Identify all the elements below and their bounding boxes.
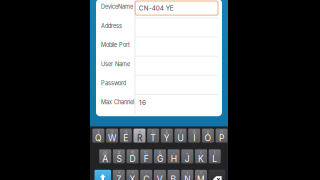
staticText: @ [103,150,108,156]
staticText: G [157,154,163,164]
staticText: * [118,171,120,176]
staticText: CN-404 YE [139,4,174,12]
button[interactable]: 1 [92,129,104,143]
staticText: 16 [139,99,146,107]
button[interactable]: + [181,149,193,163]
staticText: M [197,174,205,180]
staticText: DeviceName [101,3,133,10]
button[interactable]: ! [181,170,193,180]
button[interactable]: 4 [133,129,145,143]
staticText: User Name [101,61,130,67]
staticText: D [130,154,136,164]
staticText: Max Channel [101,99,134,106]
staticText: 5 [152,129,155,135]
button[interactable]: Address [96,18,222,37]
staticText: V [157,174,163,180]
staticText: ' [146,171,147,176]
button[interactable]: 7 [174,129,186,143]
staticText: ; [173,171,174,176]
staticText: Mobile Port [101,42,130,48]
staticText: - [173,150,175,156]
button[interactable]: ) [209,149,221,163]
button[interactable]: $ [127,149,139,163]
staticText: W [108,133,116,143]
button[interactable]: Mobile Port [96,37,222,56]
button[interactable]: : [154,170,166,180]
staticText: T [150,133,156,143]
button[interactable]: " [126,170,138,180]
button[interactable]: 9 [202,129,214,143]
button[interactable]: % [140,149,152,163]
button[interactable]: - [168,149,180,163]
staticText: H [171,154,177,164]
button[interactable]: ? [195,170,207,180]
staticText: 0 [220,129,223,135]
staticText: O [204,133,211,143]
staticText: R [137,133,142,143]
button[interactable]: 8 [188,129,200,143]
staticText: & [158,150,161,156]
staticText: L [212,154,217,164]
button[interactable]: Password [96,76,222,95]
staticText: 4 [138,129,141,135]
button[interactable]: Delete [209,170,225,180]
staticText: 7 [179,129,182,135]
staticText: X [129,174,135,180]
staticText: # [117,150,120,156]
button[interactable]: # [113,149,125,163]
button[interactable]: 3 [120,129,132,143]
staticText: 3 [124,129,127,135]
button[interactable]: 0 [216,129,228,143]
staticText: % [144,150,149,156]
staticText: B [171,174,177,180]
button[interactable]: ( [195,149,207,163]
staticText: N [184,174,190,180]
staticText: + [186,150,189,156]
staticText: 8 [193,129,196,135]
staticText: Z [116,174,121,180]
staticText: F [144,154,149,164]
button[interactable]: @ [99,149,111,163]
button[interactable]: 6 [161,129,173,143]
staticText: C [143,174,149,180]
button[interactable]: DeviceName [96,0,222,18]
staticText: " [131,171,133,176]
staticText: Q [95,133,102,143]
button[interactable]: & [154,149,166,163]
button[interactable]: * [113,170,125,180]
button[interactable]: ' [140,170,152,180]
staticText: 9 [206,129,209,135]
button[interactable]: User Name [96,56,222,76]
staticText: U [177,133,183,143]
staticText: 1 [97,129,99,135]
staticText: ( [200,150,202,156]
staticText: Y [164,133,170,143]
staticText: P [219,133,224,143]
button[interactable]: Max Channel [96,95,222,114]
staticText: Address [101,22,122,29]
staticText: 6 [165,129,168,135]
staticText: K [198,154,204,164]
staticText: ? [200,171,202,176]
staticText: Password [101,80,126,87]
staticText: S [116,154,121,164]
staticText: A [102,154,108,164]
staticText: ) [214,150,216,156]
staticText: E [123,133,128,143]
staticText: 2 [111,129,114,135]
staticText: $ [131,150,134,156]
staticText: ! [187,171,188,176]
button[interactable]: ; [168,170,180,180]
staticText: J [185,154,190,164]
button[interactable]: Shift [94,170,111,180]
button[interactable]: 5 [147,129,159,143]
button[interactable]: 2 [106,129,118,143]
staticText: I [193,133,195,143]
